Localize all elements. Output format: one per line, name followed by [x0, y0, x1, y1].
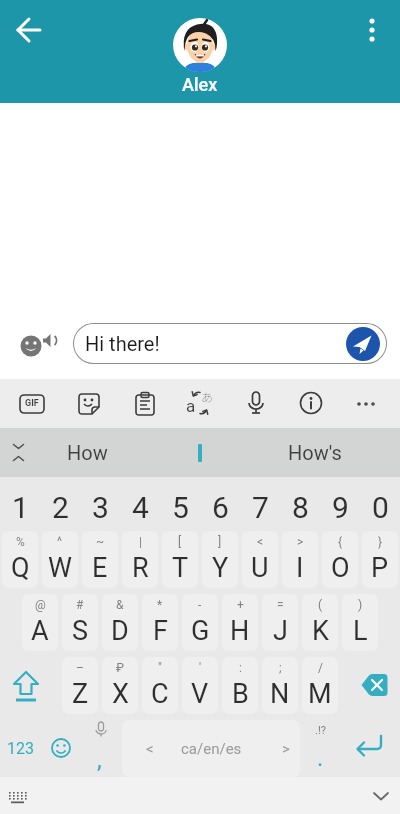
- staticText: ~: [96, 535, 105, 549]
- button[interactable]: ₽: [102, 657, 138, 714]
- button[interactable]: ;: [262, 657, 298, 714]
- staticText: .!?: [315, 724, 326, 737]
- button[interactable]: How: [45, 428, 130, 477]
- button[interactable]: }: [362, 531, 398, 588]
- staticText: I: [296, 552, 304, 584]
- button[interactable]: [240, 387, 272, 419]
- button[interactable]: 1: [0, 477, 40, 531]
- button[interactable]: 5: [160, 477, 200, 531]
- staticText: <: [146, 740, 154, 758]
- button[interactable]: <: [122, 720, 300, 777]
- button[interactable]: ]: [202, 531, 238, 588]
- staticText: H: [230, 615, 250, 647]
- button[interactable]: @: [22, 594, 58, 651]
- button[interactable]: [129, 387, 161, 419]
- button[interactable]: 7: [240, 477, 280, 531]
- button[interactable]: {: [322, 531, 358, 588]
- button[interactable]: >: [282, 531, 318, 588]
- staticText: 7: [252, 490, 269, 525]
- staticText: A: [31, 615, 49, 647]
- staticText: &: [116, 598, 124, 612]
- button[interactable]: [344, 657, 400, 714]
- staticText: T: [172, 552, 189, 584]
- button[interactable]: [9, 10, 49, 50]
- button[interactable]: 4: [120, 477, 160, 531]
- staticText: ): [358, 598, 363, 612]
- staticText: {: [338, 535, 343, 549]
- button[interactable]: [0, 657, 56, 714]
- button[interactable]: How's: [270, 428, 360, 477]
- button[interactable]: ': [182, 657, 218, 714]
- button[interactable]: 123: [0, 720, 40, 777]
- staticText: N: [270, 678, 290, 710]
- staticText: 2: [52, 490, 69, 525]
- staticText: <: [257, 535, 264, 549]
- staticText: C: [151, 678, 169, 710]
- button[interactable]: [340, 720, 400, 777]
- button[interactable]: :: [222, 657, 258, 714]
- button[interactable]: a: [184, 387, 216, 419]
- button[interactable]: ": [142, 657, 178, 714]
- staticText: 6: [212, 490, 229, 525]
- button[interactable]: GIF: [16, 387, 48, 419]
- staticText: M: [308, 678, 332, 710]
- button[interactable]: -: [182, 594, 218, 651]
- button[interactable]: 3: [80, 477, 120, 531]
- staticText: –: [76, 661, 84, 675]
- staticText: 0: [372, 490, 389, 525]
- button[interactable]: [346, 327, 380, 361]
- staticText: =: [277, 598, 284, 612]
- button[interactable]: [295, 387, 327, 419]
- button[interactable]: [350, 387, 382, 419]
- staticText: Hi there!: [85, 332, 160, 355]
- staticText: あ: [201, 388, 214, 405]
- button[interactable]: <: [242, 531, 278, 588]
- button[interactable]: [368, 783, 394, 809]
- button[interactable]: *: [142, 594, 178, 651]
- button[interactable]: .!?: [300, 720, 340, 777]
- button[interactable]: –: [62, 657, 98, 714]
- button[interactable]: ~: [82, 531, 118, 588]
- button[interactable]: ,: [80, 720, 120, 777]
- staticText: }: [378, 535, 383, 549]
- staticText: 4: [132, 490, 149, 525]
- button[interactable]: [6, 785, 32, 811]
- staticText: ]: [218, 535, 222, 549]
- button[interactable]: Hi there!: [73, 323, 387, 364]
- button[interactable]: 0: [360, 477, 400, 531]
- staticText: Z: [72, 678, 89, 710]
- button[interactable]: [14, 322, 58, 366]
- button[interactable]: ^: [42, 531, 78, 588]
- staticText: -: [198, 598, 202, 612]
- button[interactable]: /: [302, 657, 338, 714]
- staticText: ': [199, 661, 202, 675]
- button[interactable]: [352, 10, 392, 50]
- button[interactable]: &: [102, 594, 138, 651]
- button[interactable]: 9: [320, 477, 360, 531]
- button[interactable]: ): [342, 594, 378, 651]
- staticText: [: [178, 535, 182, 549]
- button[interactable]: [: [162, 531, 198, 588]
- button[interactable]: 6: [200, 477, 240, 531]
- staticText: 123: [7, 739, 34, 758]
- staticText: >: [282, 740, 290, 758]
- button[interactable]: +: [222, 594, 258, 651]
- staticText: (: [318, 598, 323, 612]
- button[interactable]: 8: [280, 477, 320, 531]
- button[interactable]: 2: [40, 477, 80, 531]
- staticText: X: [112, 678, 129, 710]
- button[interactable]: [6, 440, 31, 465]
- button[interactable]: [73, 387, 105, 419]
- staticText: /: [318, 661, 323, 675]
- button[interactable]: =: [262, 594, 298, 651]
- button[interactable]: |: [122, 531, 158, 588]
- staticText: Y: [212, 552, 229, 584]
- button[interactable]: (: [302, 594, 338, 651]
- button[interactable]: #: [62, 594, 98, 651]
- button[interactable]: [160, 428, 240, 477]
- staticText: 8: [292, 490, 309, 525]
- button[interactable]: %: [2, 531, 38, 588]
- button[interactable]: [40, 720, 80, 777]
- staticText: GIF: [25, 398, 39, 409]
- button[interactable]: [173, 18, 227, 72]
